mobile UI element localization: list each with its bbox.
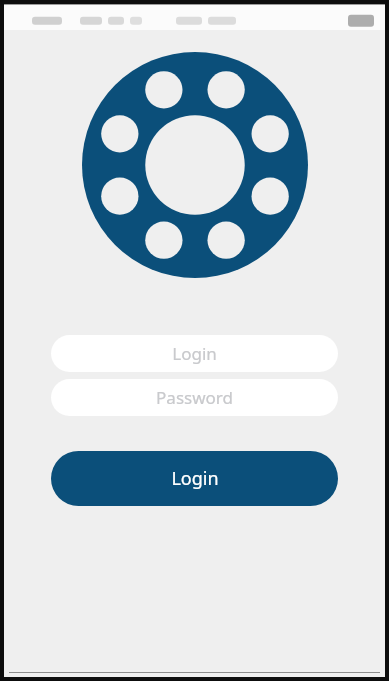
button[interactable]: Password [51,379,338,416]
button[interactable]: Login [51,451,338,506]
staticText: Login [172,342,217,365]
button[interactable]: Login [51,335,338,372]
other: App logo [79,52,311,278]
staticText: Login [171,466,219,491]
staticText: Password [156,386,233,409]
